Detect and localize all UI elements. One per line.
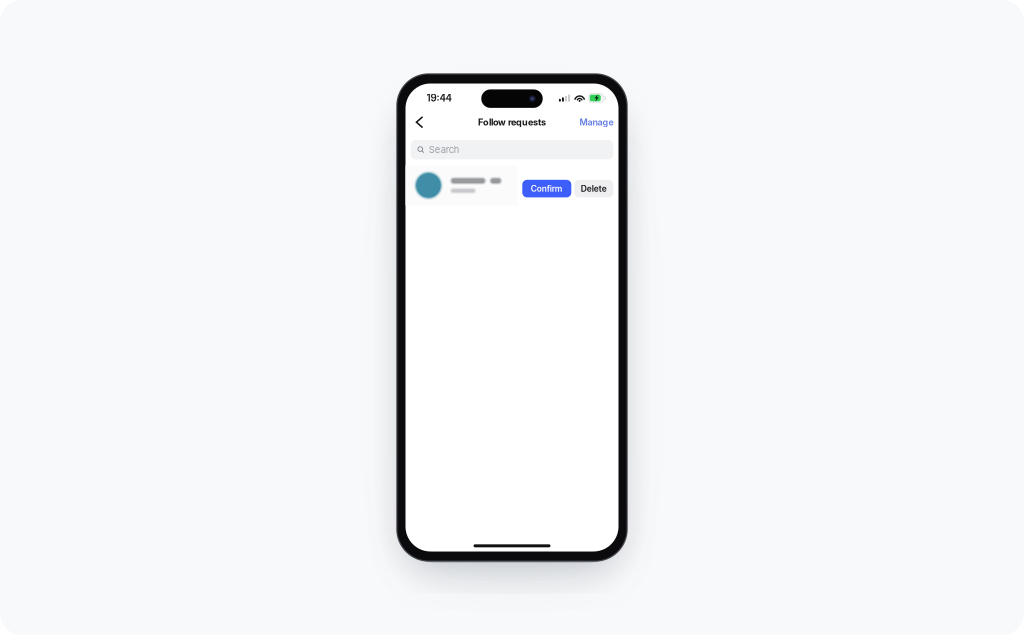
staticText: Delete [581,183,607,194]
button[interactable]: Delete [574,180,613,197]
button[interactable]: Confirm [522,180,571,197]
staticText: Follow requests [478,117,546,128]
staticText: 19:44 [426,92,451,104]
button[interactable]: Manage [576,112,616,132]
staticText: Manage [579,117,613,128]
staticText: Confirm [531,183,563,194]
button[interactable]: Back [408,112,430,132]
staticText: Search [429,144,460,155]
button[interactable]: Search [411,140,613,159]
